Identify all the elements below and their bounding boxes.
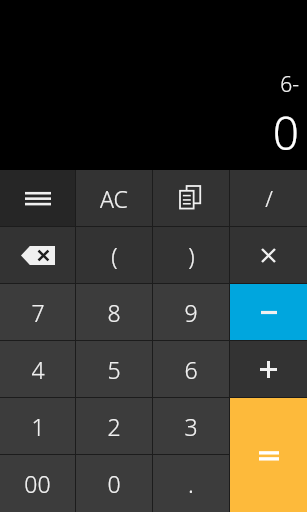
staticText: 3 (184, 411, 198, 442)
button[interactable]: 8 (76, 284, 152, 340)
staticText: 6 (184, 354, 198, 385)
staticText: ( (111, 240, 118, 271)
staticText: 8 (107, 297, 121, 328)
button[interactable]: Plus (230, 341, 307, 397)
button[interactable]: 1 (0, 398, 75, 454)
button[interactable]: Multiply (230, 227, 307, 283)
staticText: 1 (31, 411, 45, 442)
staticText: 6- (280, 70, 299, 99)
staticText: / (265, 183, 273, 213)
staticText: 9 (184, 297, 198, 328)
button[interactable]: 5 (76, 341, 152, 397)
button[interactable]: / (230, 170, 307, 226)
button[interactable]: 4 (0, 341, 75, 397)
button[interactable]: 9 (153, 284, 229, 340)
button[interactable]: Minus (230, 284, 307, 340)
button[interactable]: 2 (76, 398, 152, 454)
button[interactable]: 00 (0, 455, 75, 512)
staticText: ) (188, 240, 195, 271)
staticText: 7 (31, 297, 45, 328)
staticText: 00 (24, 468, 51, 499)
button[interactable]: 6 (153, 341, 229, 397)
button[interactable]: Copy (153, 170, 229, 226)
button[interactable]: Menu (0, 170, 75, 226)
button[interactable]: 7 (0, 284, 75, 340)
button[interactable]: Equals (230, 398, 307, 512)
button[interactable]: Backspace (0, 227, 75, 283)
button[interactable]: 3 (153, 398, 229, 454)
staticText: 0 (107, 468, 121, 499)
staticText: 2 (107, 411, 121, 442)
staticText: 0 (272, 101, 299, 164)
staticText: AC (100, 183, 128, 214)
button[interactable]: ) (153, 227, 229, 283)
staticText: 4 (31, 354, 45, 385)
button[interactable]: AC (76, 170, 152, 226)
button[interactable]: . (153, 455, 229, 512)
staticText: 5 (107, 354, 121, 385)
button[interactable]: 0 (76, 455, 152, 512)
button[interactable]: ( (76, 227, 152, 283)
staticText: . (188, 467, 194, 500)
